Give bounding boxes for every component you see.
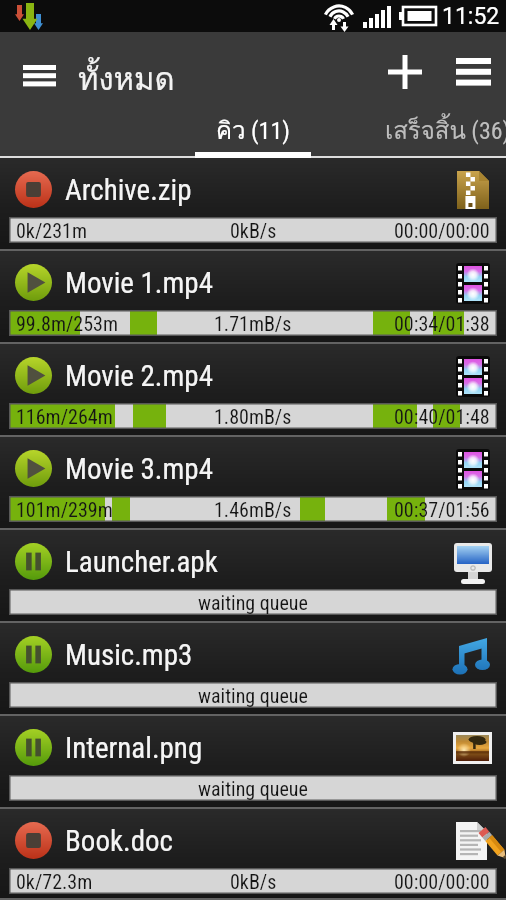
staticText: 00:00/00:00	[394, 219, 490, 242]
staticText: 1.80mB/s	[214, 405, 292, 428]
staticText: 1.71mB/s	[214, 312, 292, 335]
staticText: waiting queue	[198, 591, 308, 614]
staticText: Archive.zip	[65, 173, 192, 207]
staticText: 0k/231m	[16, 219, 87, 242]
staticText: Movie 2.mp4	[65, 359, 213, 393]
button[interactable]: คิว (11)	[195, 102, 311, 158]
staticText: 116m/264m	[16, 405, 113, 428]
button[interactable]: Book.doc	[0, 809, 506, 900]
button[interactable]: Movie 1.mp4	[0, 251, 506, 344]
staticText: 99.8m/253m	[16, 312, 119, 335]
staticText: 00:34/01:38	[394, 312, 490, 335]
staticText: Internal.png	[65, 731, 203, 765]
button[interactable]: Movie 2.mp4	[0, 344, 506, 437]
staticText: 0kB/s	[230, 870, 277, 893]
staticText: Launcher.apk	[65, 545, 218, 579]
staticText: 00:37/01:56	[394, 498, 490, 521]
staticText: Movie 3.mp4	[65, 452, 213, 486]
button[interactable]	[380, 47, 430, 97]
staticText: 0k/72.3m	[16, 870, 93, 893]
button[interactable]: Internal.png	[0, 716, 506, 809]
button[interactable]: Launcher.apk	[0, 530, 506, 623]
staticText: 00:40/01:48	[394, 405, 490, 428]
staticText: ทั้งหมด	[78, 54, 175, 103]
button[interactable]: เสร็จสิ้น (36)	[348, 100, 506, 158]
staticText: 0kB/s	[230, 219, 277, 242]
staticText: 11:52	[442, 3, 500, 30]
staticText: waiting queue	[198, 777, 308, 800]
staticText: 00:00/00:00	[394, 870, 490, 893]
button[interactable]	[448, 47, 498, 97]
staticText: Book.doc	[65, 824, 173, 858]
button[interactable]	[13, 55, 66, 96]
staticText: Movie 1.mp4	[65, 266, 213, 300]
staticText: 101m/239m	[16, 498, 113, 521]
staticText: 1.46mB/s	[214, 498, 292, 521]
staticText: waiting queue	[198, 684, 308, 707]
button[interactable]: Movie 3.mp4	[0, 437, 506, 530]
staticText: คิว (11)	[216, 111, 290, 149]
staticText: Music.mp3	[65, 638, 193, 672]
button[interactable]: Archive.zip	[0, 158, 506, 251]
button[interactable]: Music.mp3	[0, 623, 506, 716]
staticText: เสร็จสิ้น (36)	[385, 111, 506, 149]
